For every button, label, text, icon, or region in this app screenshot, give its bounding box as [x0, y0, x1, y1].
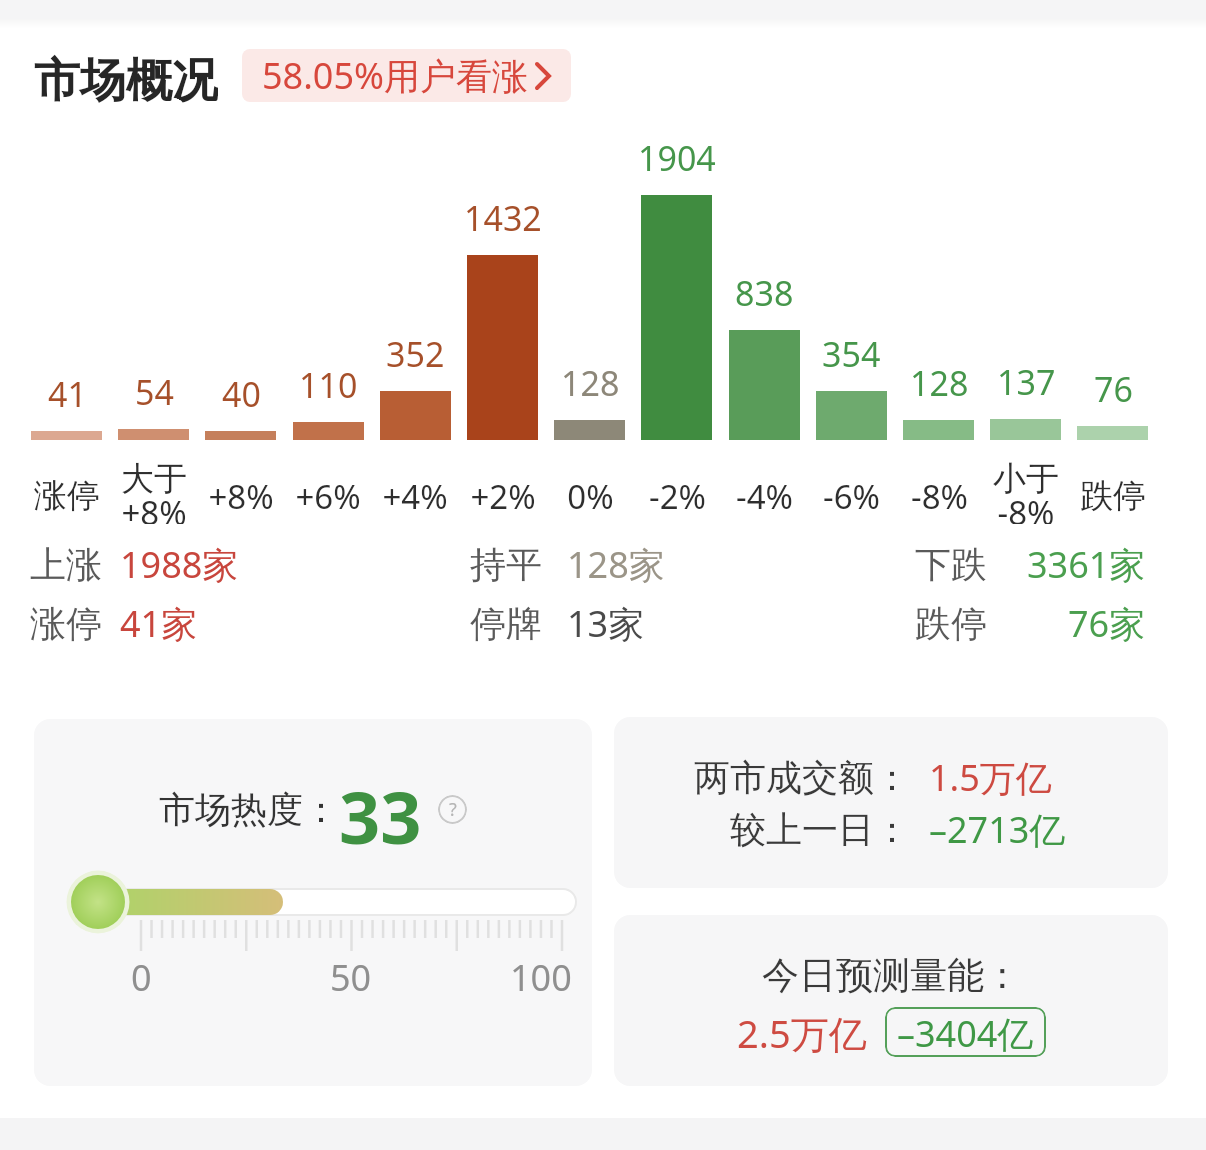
staticText: 128: [910, 360, 969, 400]
staticText: 3361家: [1027, 540, 1146, 589]
staticText: 54: [135, 369, 174, 409]
staticText: 跌停: [1080, 475, 1146, 517]
staticText: 41: [48, 371, 87, 411]
staticText: 0%: [567, 474, 614, 519]
button[interactable]: 58.05%用户看涨: [242, 49, 571, 102]
staticText: 128: [561, 360, 620, 400]
staticText: 两市成交额：: [694, 755, 910, 800]
staticText: –2713亿: [929, 805, 1066, 854]
staticText: +2%: [470, 474, 536, 519]
staticText: 今日预测量能：: [762, 952, 1021, 999]
staticText: 13家: [567, 599, 645, 648]
staticText: +6%: [295, 474, 361, 519]
staticText: 持平: [470, 542, 542, 587]
staticText: 128家: [567, 540, 665, 589]
staticText: +8%: [208, 474, 274, 519]
staticText: 0: [131, 953, 152, 993]
staticText: 76家: [1068, 599, 1146, 648]
staticText: 较上一日：: [730, 807, 910, 852]
staticText: 涨停: [30, 601, 102, 646]
staticText: 352: [386, 331, 445, 371]
staticText: –3404亿: [897, 1009, 1034, 1055]
staticText: 1432: [464, 195, 542, 235]
staticText: -6%: [823, 474, 880, 519]
staticText: -2%: [649, 474, 706, 519]
staticText: 100: [510, 953, 572, 993]
staticText: 涨停: [34, 475, 100, 517]
staticText: 137: [997, 359, 1056, 399]
staticText: 小于 -8%: [993, 458, 1059, 524]
staticText: 1904: [638, 135, 716, 175]
staticText: 50: [330, 953, 372, 993]
staticText: 市场热度：: [159, 787, 339, 832]
staticText: 大于 +8%: [121, 458, 187, 524]
staticText: 1988家: [120, 540, 239, 589]
staticText: 上涨: [30, 542, 102, 587]
staticText: 市场概况: [34, 52, 218, 104]
staticText: 1.5万亿: [929, 753, 1052, 802]
button[interactable]: ?: [438, 795, 467, 824]
staticText: 33: [339, 767, 422, 851]
staticText: 838: [735, 270, 794, 310]
staticText: 2.5万亿: [737, 1007, 867, 1057]
button[interactable]: 今日预测量能：: [614, 915, 1168, 1086]
staticText: 110: [299, 362, 358, 402]
staticText: ?: [449, 797, 457, 822]
staticText: 354: [822, 331, 881, 371]
button[interactable]: 市场热度：: [34, 719, 592, 1086]
staticText: 41家: [120, 599, 198, 648]
staticText: +4%: [382, 474, 448, 519]
button[interactable]: 两市成交额：: [614, 717, 1168, 888]
staticText: 跌停: [915, 601, 987, 646]
staticText: -8%: [911, 474, 968, 519]
staticText: 76: [1094, 366, 1133, 406]
staticText: 40: [222, 371, 261, 411]
staticText: 下跌: [915, 542, 987, 587]
staticText: 58.05%用户看涨: [262, 51, 528, 100]
staticText: 停牌: [470, 601, 542, 646]
staticText: -4%: [736, 474, 793, 519]
